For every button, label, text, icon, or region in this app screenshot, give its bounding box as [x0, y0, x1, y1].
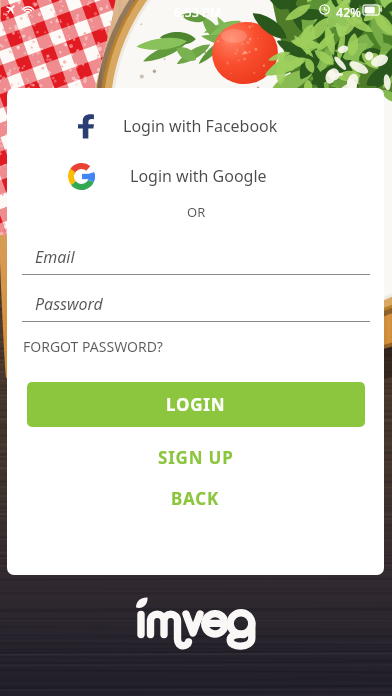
staticText: 6:53 PM: [174, 4, 222, 21]
staticText: LOGIN: [166, 393, 226, 416]
staticText: OR: [187, 203, 206, 221]
staticText: Login with Google: [130, 165, 267, 187]
button[interactable]: Facebook: [7, 102, 384, 150]
staticText: 42%: [336, 4, 361, 21]
other: Facebook: [71, 112, 99, 140]
other: Google: [68, 163, 95, 190]
staticText: Login with Facebook: [123, 115, 278, 137]
staticText: Email: [35, 246, 75, 268]
button[interactable]: Google: [7, 152, 384, 200]
other: imveg: [136, 597, 256, 650]
staticText: BACK: [171, 487, 220, 510]
button[interactable]: BACK: [7, 478, 384, 518]
staticText: Password: [35, 293, 103, 315]
button[interactable]: LOGIN: [27, 382, 365, 427]
button[interactable]: FORGOT PASSWORD?: [23, 337, 163, 356]
staticText: SIGN UP: [158, 446, 234, 469]
button[interactable]: SIGN UP: [7, 437, 384, 477]
staticText: FORGOT PASSWORD?: [23, 337, 163, 356]
